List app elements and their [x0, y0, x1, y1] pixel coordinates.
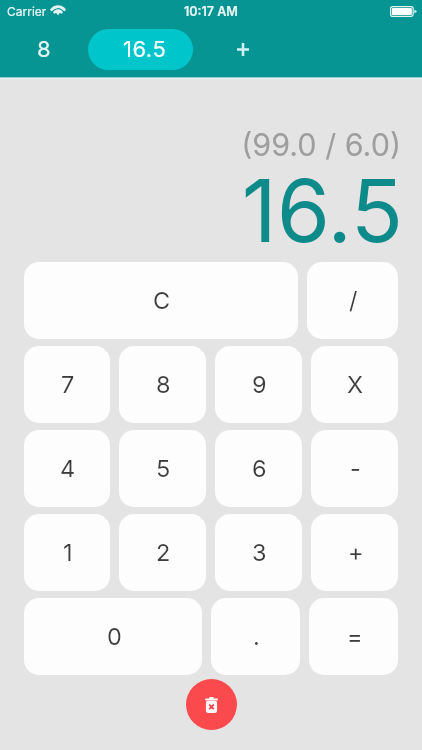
button[interactable]: C	[24, 262, 298, 339]
button[interactable]: 0	[24, 598, 202, 675]
button[interactable]: 9	[215, 346, 302, 423]
staticText: 10:17 AM	[184, 4, 238, 19]
staticText: 8	[37, 36, 51, 63]
staticText: /	[349, 286, 358, 314]
button[interactable]: 4	[24, 430, 110, 507]
staticText: 2	[156, 538, 171, 566]
staticText: 4	[60, 454, 76, 482]
button[interactable]: 3	[215, 514, 302, 591]
button[interactable]: Add calculation tab	[193, 22, 293, 77]
staticText: C	[153, 286, 171, 314]
button[interactable]: +	[311, 514, 398, 591]
staticText: .	[253, 622, 260, 650]
staticText: -	[350, 454, 361, 482]
staticText: 6	[252, 454, 267, 482]
button[interactable]: 1	[24, 514, 110, 591]
button[interactable]: .	[211, 598, 300, 675]
staticText: =	[347, 622, 363, 650]
staticText: X	[347, 370, 364, 398]
staticText: 5	[156, 454, 171, 482]
staticText: 8	[156, 370, 171, 398]
button[interactable]: 7	[24, 346, 110, 423]
staticText: 1	[63, 538, 73, 566]
staticText: 3	[252, 538, 267, 566]
staticText: (99.0 / 6.0)	[241, 126, 401, 163]
staticText: Carrier	[7, 4, 47, 19]
button[interactable]: -	[311, 430, 398, 507]
button[interactable]: 8	[119, 346, 206, 423]
button[interactable]: Delete	[186, 679, 237, 730]
staticText: 16.5	[123, 36, 167, 63]
staticText: 9	[252, 370, 267, 398]
button[interactable]: 2	[119, 514, 206, 591]
button[interactable]: 5	[119, 430, 206, 507]
button[interactable]: 16.5	[88, 29, 193, 70]
button[interactable]: 6	[215, 430, 302, 507]
button[interactable]: =	[309, 598, 398, 675]
button[interactable]: 8	[0, 22, 88, 77]
staticText: 16.5	[241, 159, 403, 258]
button[interactable]: X	[311, 346, 398, 423]
staticText: 7	[61, 370, 75, 398]
staticText: 0	[107, 622, 122, 650]
staticText: +	[348, 538, 364, 566]
button[interactable]: /	[307, 262, 398, 339]
